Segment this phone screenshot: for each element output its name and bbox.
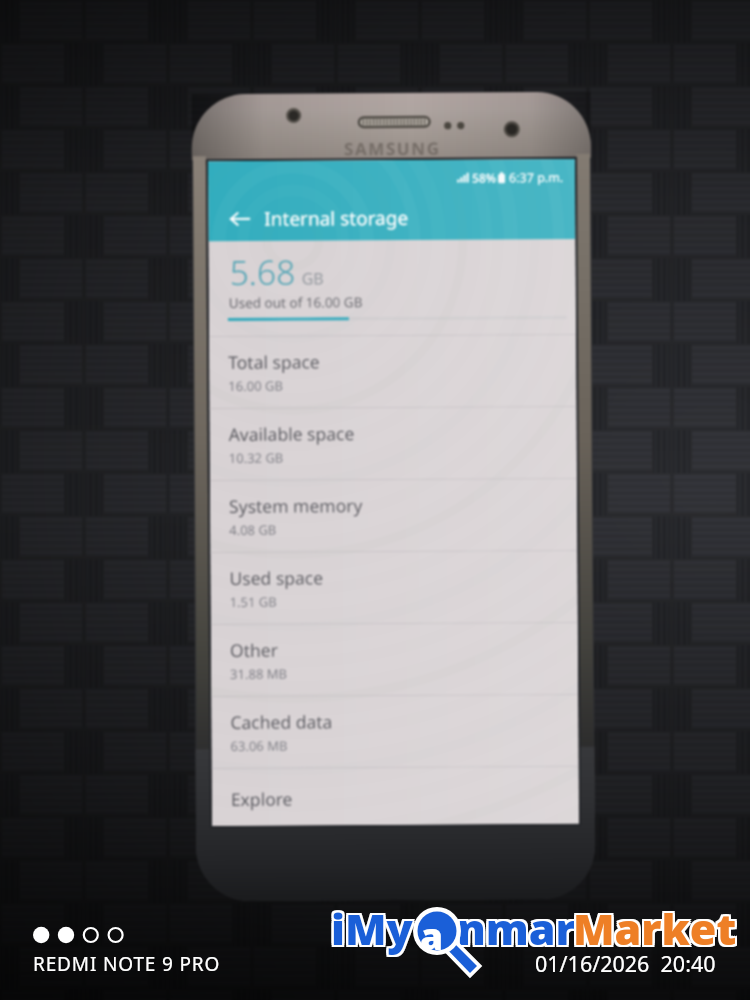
staticText: 16.00 GB (228, 377, 283, 395)
staticText: a (420, 910, 444, 960)
staticText: Used space (229, 565, 323, 590)
staticText: Market (571, 901, 735, 960)
staticText: nmar (455, 901, 574, 960)
staticText: 4.08 GB (229, 521, 277, 539)
staticText: iMy (331, 901, 413, 960)
staticText: iMy (333, 899, 415, 958)
staticText: iMy (333, 901, 415, 960)
staticText: Used out of 16.00 GB (229, 293, 363, 312)
staticText: Other (230, 638, 278, 662)
staticText: iMy (329, 899, 411, 958)
staticText: 58% (472, 169, 496, 185)
staticText: Internal storage (264, 205, 408, 232)
staticText: Total space (228, 349, 320, 374)
staticText: nmar (459, 897, 578, 956)
staticText: SAMSUNG (344, 137, 441, 160)
button[interactable]: Used space (210, 550, 578, 624)
staticText: Market (573, 899, 737, 958)
staticText: iMy (329, 901, 411, 960)
button[interactable]: Available space (209, 406, 577, 480)
staticText: REDMI NOTE 9 PRO (33, 951, 221, 977)
staticText: GB (302, 267, 325, 289)
staticText: nmar (459, 901, 578, 960)
staticText: Market (571, 899, 735, 958)
staticText: iMy (331, 899, 413, 958)
staticText: Explore (231, 787, 293, 811)
button[interactable]: Cached data (211, 694, 579, 768)
button[interactable]: Other (211, 622, 578, 696)
staticText: 31.88 MB (230, 665, 287, 683)
staticText: Market (571, 897, 735, 956)
staticText: nmar (459, 899, 578, 958)
button[interactable]: Navigate up (214, 197, 264, 241)
staticText: 10.32 GB (229, 449, 284, 467)
staticText: Market (573, 897, 737, 956)
staticText: nmar (455, 897, 574, 956)
staticText: 63.06 MB (230, 737, 288, 755)
staticText: 5.68 (229, 249, 296, 295)
staticText: nmar (457, 899, 576, 958)
staticText: nmar (455, 899, 574, 958)
staticText: Cached data (230, 709, 332, 734)
staticText: nmar (457, 901, 576, 960)
staticText: Market (573, 901, 737, 960)
button[interactable]: Explore (212, 766, 579, 826)
staticText: 01/16/2026 20:40 (535, 949, 716, 978)
staticText: Available space (228, 421, 355, 446)
staticText: iMy (329, 897, 411, 956)
staticText: iMy (331, 897, 413, 956)
staticText: 1.51 GB (230, 593, 278, 611)
staticText: Market (575, 897, 739, 956)
staticText: 6:37 p.m. (509, 169, 564, 186)
button[interactable]: Total space (209, 334, 576, 408)
staticText: System memory (229, 493, 363, 518)
button[interactable]: System memory (210, 478, 577, 552)
staticText: nmar (457, 897, 576, 956)
staticText: iMy (333, 897, 415, 956)
staticText: Market (575, 899, 739, 958)
staticText: Market (575, 901, 739, 960)
